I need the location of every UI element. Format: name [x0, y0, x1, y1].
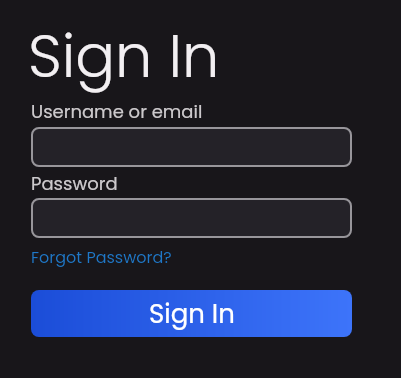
button[interactable]: Sign In — [31, 290, 352, 337]
staticText: Password — [31, 171, 118, 196]
staticText: Sign In — [149, 296, 235, 332]
button[interactable]: Forgot Password? — [31, 246, 172, 268]
button[interactable] — [31, 127, 352, 167]
staticText: Sign In — [28, 15, 220, 98]
button[interactable] — [31, 198, 352, 238]
staticText: Username or email — [31, 99, 203, 124]
